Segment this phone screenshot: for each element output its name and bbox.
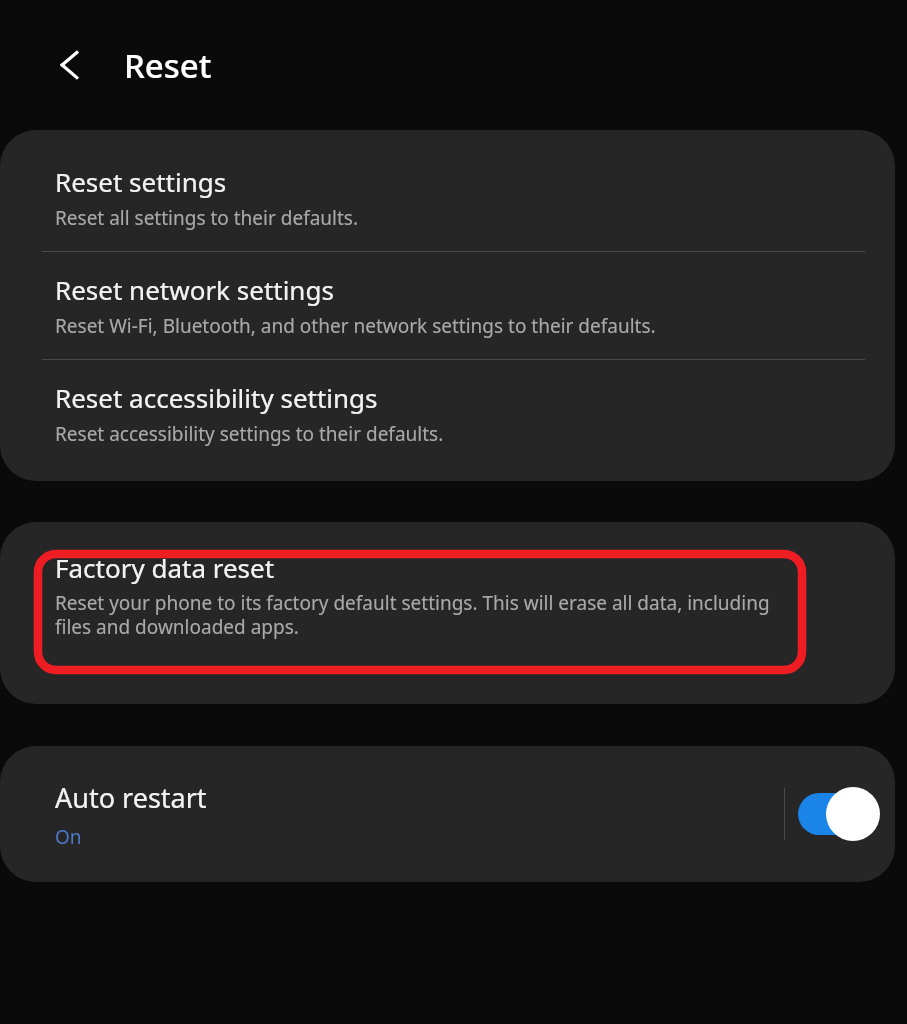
staticText: Reset accessibility settings — [55, 380, 378, 415]
staticText: Reset Wi-Fi, Bluetooth, and other networ… — [55, 313, 656, 339]
button[interactable]: Back — [35, 30, 105, 100]
staticText: Factory data reset — [55, 550, 275, 585]
staticText: Reset accessibility settings to their de… — [55, 421, 444, 447]
button[interactable]: Auto restart — [0, 765, 784, 864]
staticText: Reset your phone to its factory default … — [55, 590, 800, 639]
button[interactable]: Factory data reset — [0, 538, 895, 653]
button[interactable]: Reset accessibility settings — [0, 360, 895, 467]
staticText: Auto restart — [55, 779, 207, 816]
button[interactable]: Auto restart toggle, On — [785, 784, 885, 844]
staticText: On — [55, 824, 82, 850]
staticText: Reset settings — [55, 164, 227, 199]
staticText: Reset network settings — [55, 272, 334, 307]
staticText: Reset all settings to their defaults. — [55, 205, 359, 231]
button[interactable]: Reset settings — [0, 144, 895, 251]
staticText: Reset — [124, 43, 212, 88]
button[interactable]: Reset network settings — [0, 252, 895, 359]
